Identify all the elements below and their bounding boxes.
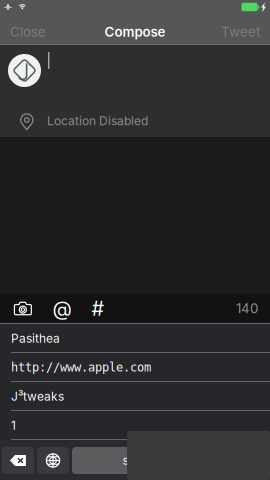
staticText: Compose xyxy=(104,24,165,40)
staticText: Tweet xyxy=(221,24,260,40)
staticText: @ xyxy=(52,296,71,321)
button[interactable]: Location Disabled xyxy=(0,107,270,135)
button[interactable]: Tweet xyxy=(213,20,268,44)
button[interactable]: Mention someone xyxy=(45,294,79,323)
button[interactable]: space xyxy=(72,447,207,474)
button[interactable]: Next keyboard xyxy=(37,447,69,474)
button[interactable]: 1 xyxy=(0,411,270,440)
staticText: # xyxy=(91,296,104,321)
button[interactable]: http://www.apple.com xyxy=(0,353,270,382)
button[interactable]: Delete xyxy=(2,447,34,474)
button[interactable]: Close xyxy=(2,20,54,44)
staticText: 140 xyxy=(236,300,258,316)
button[interactable]: Add photo xyxy=(5,294,41,323)
button[interactable]: Add hashtag xyxy=(83,294,113,323)
staticText: Pasithea xyxy=(11,331,60,345)
staticText: http://www.apple.com xyxy=(11,360,151,374)
staticText: space xyxy=(122,453,156,468)
staticText: Location Disabled xyxy=(47,114,148,128)
button[interactable]: Pasithea xyxy=(0,324,270,353)
staticText: Close xyxy=(10,24,46,40)
staticText: 1 xyxy=(11,418,16,432)
staticText: J³tweaks xyxy=(11,389,64,403)
button[interactable]: J³tweaks xyxy=(0,382,270,411)
